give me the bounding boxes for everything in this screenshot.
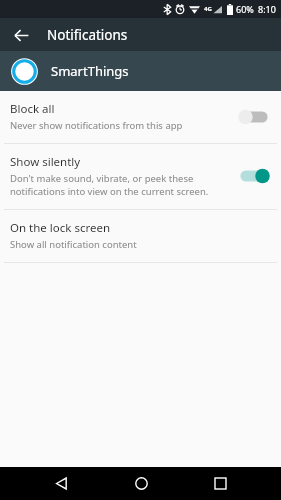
button[interactable]: SmartThings — [0, 51, 281, 91]
staticText: 8:10 — [258, 3, 276, 15]
button[interactable]: Back — [7, 21, 35, 49]
staticText: SmartThings — [51, 62, 129, 80]
staticText: Never show notifications from this app — [10, 119, 183, 132]
staticText: Block all — [10, 101, 55, 117]
staticText: Don't make sound, vibrate, or peek these… — [10, 172, 209, 198]
staticText: Show all notification content — [10, 238, 137, 251]
staticText: Notifications — [47, 26, 128, 44]
button[interactable]: On the lock screen — [0, 210, 281, 262]
button[interactable]: Home — [122, 467, 160, 500]
button[interactable]: Back — [42, 467, 80, 500]
button[interactable]: On — [237, 165, 271, 187]
staticText: 4G — [204, 5, 212, 13]
button[interactable]: Off — [237, 106, 271, 128]
staticText: On the lock screen — [10, 220, 111, 236]
button[interactable]: Recent apps — [201, 467, 239, 500]
staticText: Show silently — [10, 154, 81, 170]
button[interactable]: Block all — [0, 91, 281, 143]
staticText: 60% — [236, 3, 254, 15]
button[interactable]: Show silently — [0, 144, 281, 209]
